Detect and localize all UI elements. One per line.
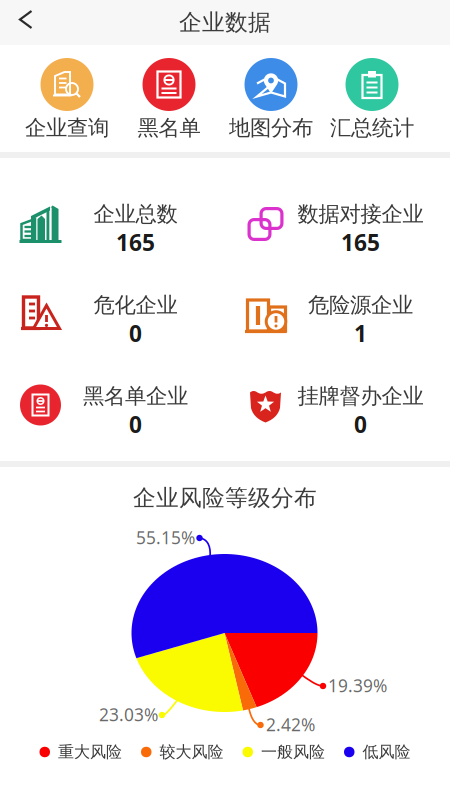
staticText: 重大风险	[58, 742, 122, 762]
button[interactable]: 企业查询	[16, 54, 118, 149]
staticText: 一般风险	[261, 742, 325, 762]
staticText: 危险源企业	[308, 292, 413, 318]
staticText: 1	[354, 318, 367, 348]
staticText: 低风险	[362, 742, 410, 762]
staticText: 数据对接企业	[297, 201, 423, 227]
staticText: 黑名单	[137, 115, 200, 141]
staticText: 企业总数	[93, 201, 177, 227]
staticText: 企业数据	[179, 9, 271, 36]
staticText: 0	[129, 318, 142, 348]
staticText: 企业风险等级分布	[133, 484, 317, 512]
staticText: 挂牌督办企业	[297, 383, 423, 409]
staticText: 汇总统计	[330, 115, 414, 141]
staticText: 0	[354, 409, 367, 439]
button[interactable]: 汇总统计	[321, 54, 423, 149]
staticText: 19.39%	[328, 674, 387, 697]
staticText: 165	[341, 227, 380, 257]
staticText: 23.03%	[99, 703, 158, 726]
button[interactable]: Back	[0, 0, 46, 45]
staticText: 165	[116, 227, 155, 257]
staticText: 较大风险	[159, 742, 223, 762]
button[interactable]: 危化企业	[0, 273, 225, 364]
staticText: 黑名单企业	[83, 383, 188, 409]
button[interactable]: 危险源企业	[225, 273, 450, 364]
staticText: 危化企业	[93, 292, 177, 318]
button[interactable]: 黑名单企业	[0, 364, 225, 455]
staticText: 2.42%	[266, 713, 315, 736]
button[interactable]: 黑名单	[118, 54, 220, 149]
staticText: 企业查询	[25, 115, 109, 141]
button[interactable]: 企业总数	[0, 182, 225, 273]
button[interactable]: 挂牌督办企业	[225, 364, 450, 455]
button[interactable]: 地图分布	[220, 54, 322, 149]
staticText: 地图分布	[229, 115, 313, 141]
staticText: 55.15%	[136, 526, 195, 549]
staticText: 0	[129, 409, 142, 439]
button[interactable]: 数据对接企业	[225, 182, 450, 273]
